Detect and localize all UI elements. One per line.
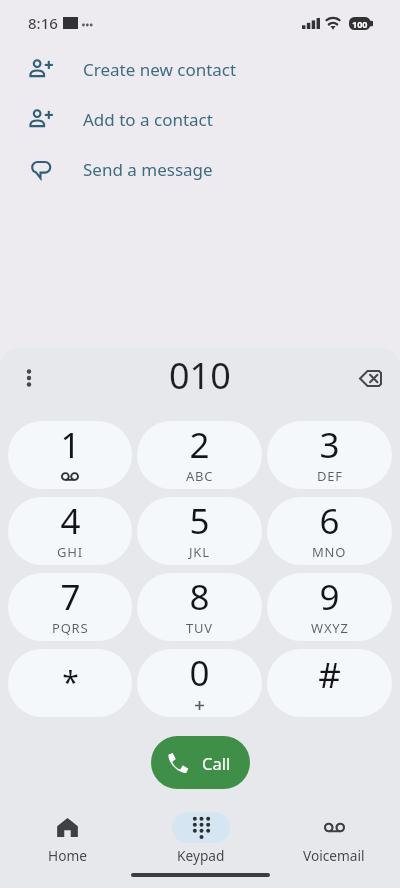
staticText: 1 bbox=[60, 421, 81, 469]
staticText: 6 bbox=[319, 497, 340, 545]
button[interactable]: 6 bbox=[267, 497, 392, 565]
button[interactable]: 9 bbox=[267, 573, 392, 641]
button[interactable]: Send a message bbox=[0, 144, 400, 194]
staticText: Create new contact bbox=[83, 58, 237, 81]
staticText: JKL bbox=[189, 543, 210, 561]
staticText: * bbox=[62, 661, 79, 702]
button[interactable]: 2 bbox=[137, 421, 262, 489]
staticText: 8:16 bbox=[28, 13, 58, 33]
button[interactable]: 1 bbox=[8, 421, 132, 489]
staticText: 5 bbox=[189, 497, 210, 545]
button[interactable]: 0 bbox=[137, 649, 262, 717]
button[interactable]: Add to a contact bbox=[0, 94, 400, 144]
staticText: Add to a contact bbox=[83, 108, 213, 131]
staticText: GHI bbox=[57, 543, 83, 561]
button[interactable]: 3 bbox=[267, 421, 392, 489]
button[interactable]: 8 bbox=[137, 573, 262, 641]
staticText: 7 bbox=[60, 573, 81, 621]
button[interactable]: # bbox=[267, 649, 392, 717]
button[interactable]: Create new contact bbox=[0, 44, 400, 94]
button[interactable]: Backspace bbox=[347, 355, 393, 401]
staticText: MNO bbox=[312, 543, 347, 561]
button[interactable]: Home bbox=[0, 805, 134, 865]
button[interactable]: * bbox=[8, 649, 132, 717]
button[interactable]: 4 bbox=[8, 497, 132, 565]
staticText: Call bbox=[202, 752, 231, 774]
staticText: Keypad bbox=[177, 846, 225, 865]
button[interactable]: 5 bbox=[137, 497, 262, 565]
staticText: Send a message bbox=[83, 158, 213, 181]
staticText: 0 bbox=[189, 649, 210, 697]
staticText: TUV bbox=[186, 619, 213, 637]
staticText: Home bbox=[48, 846, 87, 865]
staticText: # bbox=[318, 651, 341, 699]
staticText: WXYZ bbox=[311, 619, 349, 637]
staticText: 9 bbox=[319, 573, 340, 621]
staticText: 2 bbox=[189, 421, 210, 469]
button[interactable]: 7 bbox=[8, 573, 132, 641]
staticText: 8 bbox=[189, 573, 210, 621]
button[interactable]: Call bbox=[151, 736, 250, 789]
button[interactable]: More options bbox=[11, 360, 47, 396]
staticText: DEF bbox=[317, 467, 343, 485]
staticText: 4 bbox=[60, 497, 81, 545]
staticText: 100 bbox=[352, 18, 368, 30]
staticText: PQRS bbox=[52, 619, 89, 637]
staticText: 010 bbox=[169, 351, 231, 400]
button[interactable]: Voicemail bbox=[267, 805, 400, 865]
staticText: ABC bbox=[186, 467, 214, 485]
button[interactable]: Keypad bbox=[134, 805, 267, 865]
staticText: Voicemail bbox=[303, 846, 365, 865]
staticText: 3 bbox=[319, 421, 340, 469]
